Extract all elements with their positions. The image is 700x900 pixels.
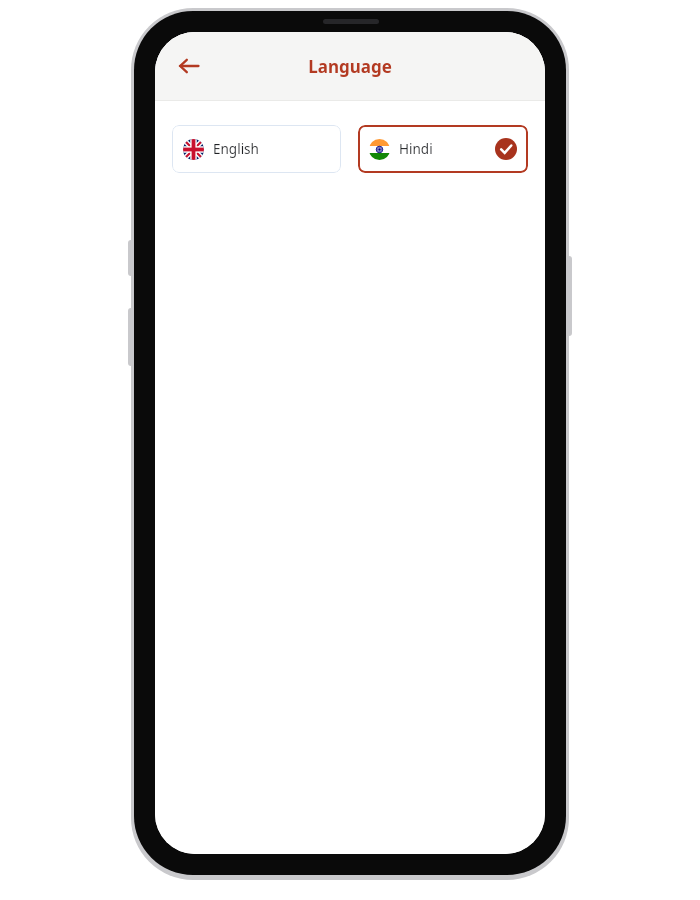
staticText: English [213,140,259,158]
button[interactable]: Back [167,44,211,88]
staticText: Language [308,55,392,78]
staticText: Hindi [399,140,433,158]
button[interactable]: English [172,125,341,173]
button[interactable]: Hindi [358,125,528,173]
